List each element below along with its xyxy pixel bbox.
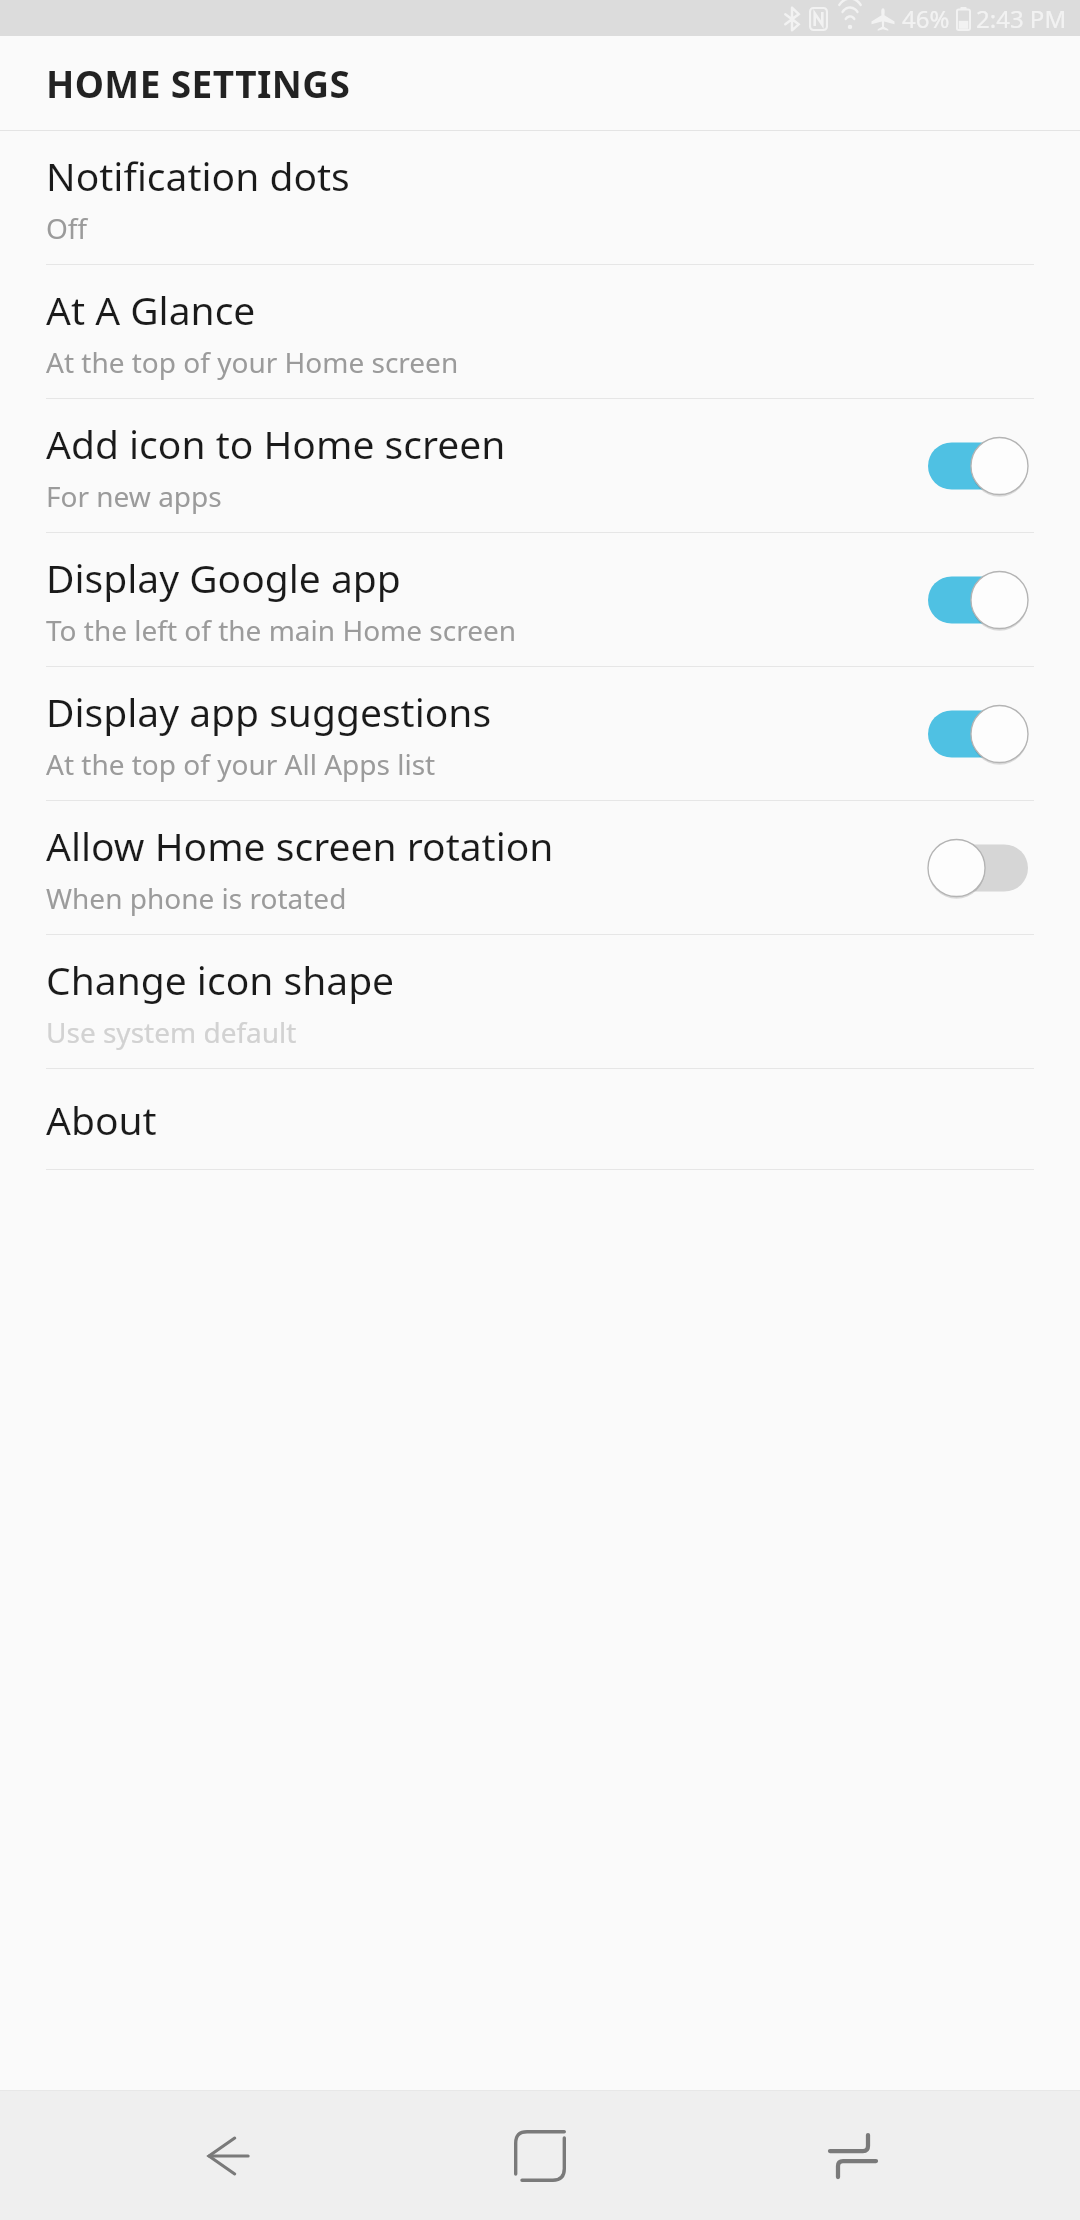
staticText: At A Glance [46, 283, 256, 336]
staticText: At the top of your Home screen [46, 343, 459, 381]
staticText: About [46, 1093, 157, 1146]
staticText: At the top of your All Apps list [46, 745, 436, 783]
button[interactable]: Back [143, 2091, 313, 2220]
button[interactable]: On [928, 435, 1028, 497]
button[interactable]: Notification dots [0, 131, 1080, 264]
staticText: HOME SETTINGS [46, 58, 351, 108]
button[interactable]: On [928, 703, 1028, 765]
staticText: For new apps [46, 477, 222, 515]
staticText: Display Google app [46, 551, 401, 604]
staticText: Off [46, 209, 88, 247]
button[interactable]: At A Glance [0, 265, 1080, 398]
staticText: Add icon to Home screen [46, 417, 506, 470]
button[interactable]: Add icon to Home screen [0, 399, 1080, 532]
button[interactable]: Off [928, 837, 1028, 899]
button[interactable]: Change icon shape [0, 935, 1080, 1068]
button[interactable]: Home [455, 2091, 625, 2220]
button[interactable]: Display app suggestions [0, 667, 1080, 800]
staticText: When phone is rotated [46, 879, 347, 917]
button[interactable]: About [0, 1069, 1080, 1169]
staticText: Allow Home screen rotation [46, 819, 554, 872]
staticText: Use system default [46, 1013, 297, 1051]
button[interactable]: Recent apps [768, 2091, 938, 2220]
staticText: Display app suggestions [46, 685, 492, 738]
staticText: 46% [902, 2, 950, 35]
staticText: To the left of the main Home screen [46, 611, 517, 649]
button[interactable]: On [928, 569, 1028, 631]
button[interactable]: Allow Home screen rotation [0, 801, 1080, 934]
staticText: Change icon shape [46, 953, 395, 1006]
staticText: 2:43 PM [976, 2, 1067, 35]
button[interactable]: Display Google app [0, 533, 1080, 666]
staticText: Notification dots [46, 149, 350, 202]
